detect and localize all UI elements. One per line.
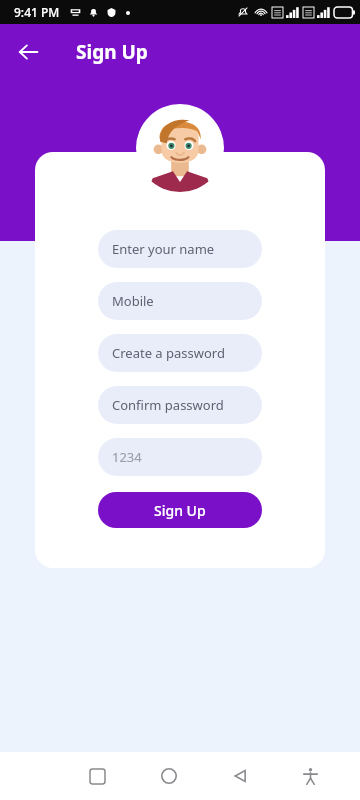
staticText: Mobile [112,292,154,310]
staticText: Confirm password [112,396,224,414]
button[interactable]: Profile photo [136,104,224,192]
button[interactable]: Back [8,32,48,72]
button[interactable]: Enter your name [98,230,262,268]
staticText: Enter your name [112,240,215,258]
button[interactable]: 1234 [98,438,262,476]
staticText: 9:41 PM [14,4,60,20]
button[interactable]: Accessibility [275,752,346,800]
button[interactable]: Mobile [98,282,262,320]
staticText: Sign Up [154,501,206,520]
button[interactable]: Create a password [98,334,262,372]
button[interactable]: Back [204,752,275,800]
button[interactable]: Confirm password [98,386,262,424]
button[interactable]: Sign Up [98,492,262,528]
button[interactable]: Recents [62,752,133,800]
button[interactable]: Home [133,752,204,800]
staticText: Create a password [112,344,225,362]
staticText: Sign Up [76,39,148,65]
staticText: 1234 [112,448,142,466]
